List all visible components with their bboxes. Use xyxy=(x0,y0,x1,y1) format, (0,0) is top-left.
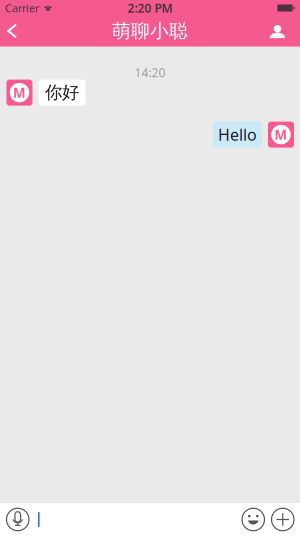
staticText: M xyxy=(13,84,26,101)
button[interactable]: Back xyxy=(0,16,29,46)
staticText: Hello xyxy=(218,124,257,145)
staticText: M xyxy=(274,126,287,143)
staticText: 你好 xyxy=(45,82,79,103)
staticText: 14:20 xyxy=(134,65,165,80)
button[interactable]: Profile xyxy=(257,16,300,46)
staticText: 2:20 PM xyxy=(127,0,172,16)
staticText: 萌聊小聪 xyxy=(112,19,188,42)
staticText: Carrier xyxy=(5,1,39,15)
button[interactable]: Voice message xyxy=(0,503,38,536)
button[interactable]: Emoji xyxy=(236,503,268,536)
button[interactable]: Message field xyxy=(38,503,236,536)
button[interactable]: More xyxy=(268,503,300,536)
